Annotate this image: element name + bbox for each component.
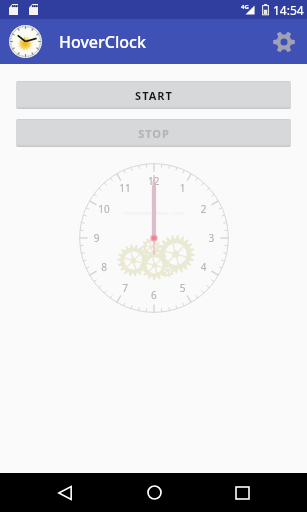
button[interactable]: Settings <box>269 27 299 57</box>
staticText: START <box>135 88 173 103</box>
staticText: STOP <box>138 126 170 141</box>
button[interactable]: START <box>16 81 291 109</box>
staticText: HoverClock <box>59 31 146 53</box>
staticText: 4G <box>241 3 249 11</box>
staticText: 14:54 <box>273 2 304 18</box>
button[interactable]: STOP <box>16 119 291 147</box>
button[interactable]: Home <box>131 473 177 512</box>
button[interactable]: Recent apps <box>219 473 265 512</box>
button[interactable]: Back <box>42 473 88 512</box>
